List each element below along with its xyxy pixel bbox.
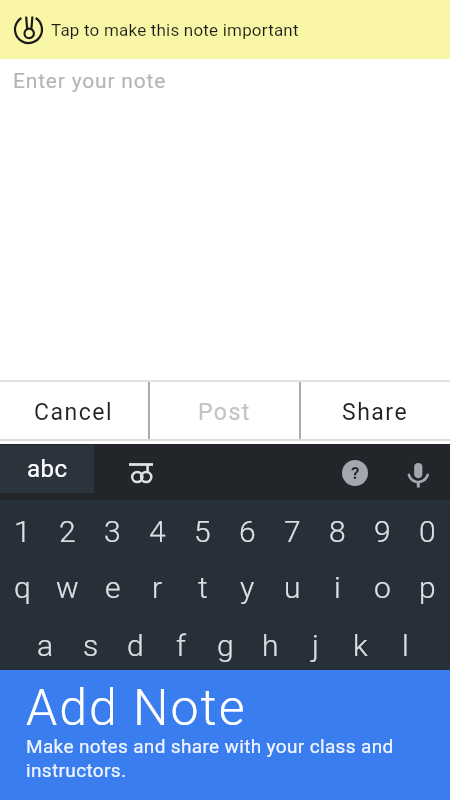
button[interactable]: Enter your note (0, 59, 450, 380)
button[interactable]: e (90, 566, 135, 608)
staticText: t (198, 570, 208, 605)
button[interactable]: r (135, 566, 180, 608)
staticText: u (284, 570, 301, 605)
staticText: p (419, 570, 436, 605)
button[interactable]: 9 (360, 510, 405, 552)
button[interactable]: a (23, 624, 68, 666)
button[interactable]: 6 (225, 510, 270, 552)
button[interactable]: i (315, 566, 360, 608)
button[interactable]: 1 (0, 510, 45, 552)
button[interactable]: 2 (45, 510, 90, 552)
staticText: j (312, 628, 319, 663)
button[interactable]: q (0, 566, 45, 608)
staticText: 1 (14, 514, 31, 549)
button[interactable]: y (225, 566, 270, 608)
button[interactable]: p (405, 566, 450, 608)
staticText: r (152, 570, 163, 605)
button[interactable]: 0 (405, 510, 450, 552)
staticText: i (334, 570, 341, 605)
button[interactable]: d (113, 624, 158, 666)
staticText: Cancel (34, 399, 114, 426)
button[interactable]: 7 (270, 510, 315, 552)
staticText: h (262, 628, 279, 663)
button[interactable]: Tap to make this note important (0, 0, 450, 59)
staticText: Enter your note (13, 69, 167, 94)
button[interactable]: abc (0, 445, 94, 493)
button[interactable]: h (248, 624, 293, 666)
staticText: 0 (419, 514, 436, 549)
staticText: g (217, 628, 234, 663)
button[interactable]: Cancel (0, 382, 148, 439)
button[interactable]: w (45, 566, 90, 608)
staticText: Make notes and share with your class and… (26, 735, 394, 782)
staticText: k (353, 628, 368, 663)
staticText: q (14, 570, 31, 605)
button[interactable]: k (338, 624, 383, 666)
button[interactable]: 4 (135, 510, 180, 552)
staticText: y (240, 570, 255, 605)
button[interactable]: Share (301, 382, 450, 439)
staticText: e (105, 570, 121, 605)
staticText: abc (27, 455, 68, 483)
button[interactable]: g (203, 624, 248, 666)
staticText: o (374, 570, 391, 605)
staticText: Add Note (26, 679, 247, 738)
staticText: 6 (239, 514, 256, 549)
staticText: 4 (149, 514, 166, 549)
staticText: 5 (194, 514, 211, 549)
staticText: 7 (284, 514, 301, 549)
button[interactable]: t (180, 566, 225, 608)
button[interactable]: 5 (180, 510, 225, 552)
staticText: Tap to make this note important (51, 20, 299, 40)
staticText: a (37, 628, 54, 663)
button[interactable]: s (68, 624, 113, 666)
staticText: 2 (59, 514, 76, 549)
staticText: 8 (329, 514, 346, 549)
button[interactable]: 3 (90, 510, 135, 552)
button[interactable]: j (293, 624, 338, 666)
staticText: Post (198, 399, 251, 426)
button[interactable]: l (383, 624, 428, 666)
staticText: 3 (104, 514, 121, 549)
button[interactable]: ? (342, 460, 368, 486)
staticText: s (83, 628, 99, 663)
staticText: Share (342, 399, 409, 426)
staticText: 9 (374, 514, 391, 549)
staticText: f (176, 628, 186, 663)
button[interactable]: u (270, 566, 315, 608)
button[interactable]: Post (150, 382, 299, 439)
button[interactable]: o (360, 566, 405, 608)
button[interactable]: 8 (315, 510, 360, 552)
button[interactable]: f (158, 624, 203, 666)
staticText: w (56, 570, 79, 605)
staticText: d (127, 628, 144, 663)
staticText: ? (351, 463, 360, 483)
button[interactable] (110, 444, 172, 497)
staticText: l (402, 628, 409, 663)
button[interactable] (398, 452, 438, 496)
